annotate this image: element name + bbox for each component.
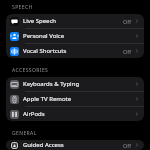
button[interactable]: Vocal Shortcuts <box>6 44 144 58</box>
button[interactable]: Keyboards & Typing <box>6 77 144 91</box>
staticText: Personal Voice <box>23 32 135 40</box>
staticText: SPEECH <box>12 4 33 11</box>
staticText: Off <box>123 18 132 25</box>
staticText: Apple TV Remote <box>23 95 135 103</box>
button[interactable]: Guided Access <box>6 140 144 150</box>
staticText: Guided Access <box>23 141 123 149</box>
staticText: AirPods <box>23 110 135 118</box>
button[interactable]: Apple TV Remote <box>6 92 144 106</box>
staticText: Keyboards & Typing <box>23 80 135 88</box>
staticText: Off <box>123 142 132 149</box>
button[interactable]: AirPods <box>6 107 144 121</box>
button[interactable]: Live Speech <box>6 14 144 28</box>
button[interactable]: Personal Voice <box>6 29 144 43</box>
staticText: Live Speech <box>23 17 123 25</box>
staticText: Vocal Shortcuts <box>23 47 123 55</box>
staticText: Off <box>123 48 132 55</box>
staticText: GENERAL <box>12 130 37 137</box>
staticText: ACCESSORIES <box>12 67 49 74</box>
